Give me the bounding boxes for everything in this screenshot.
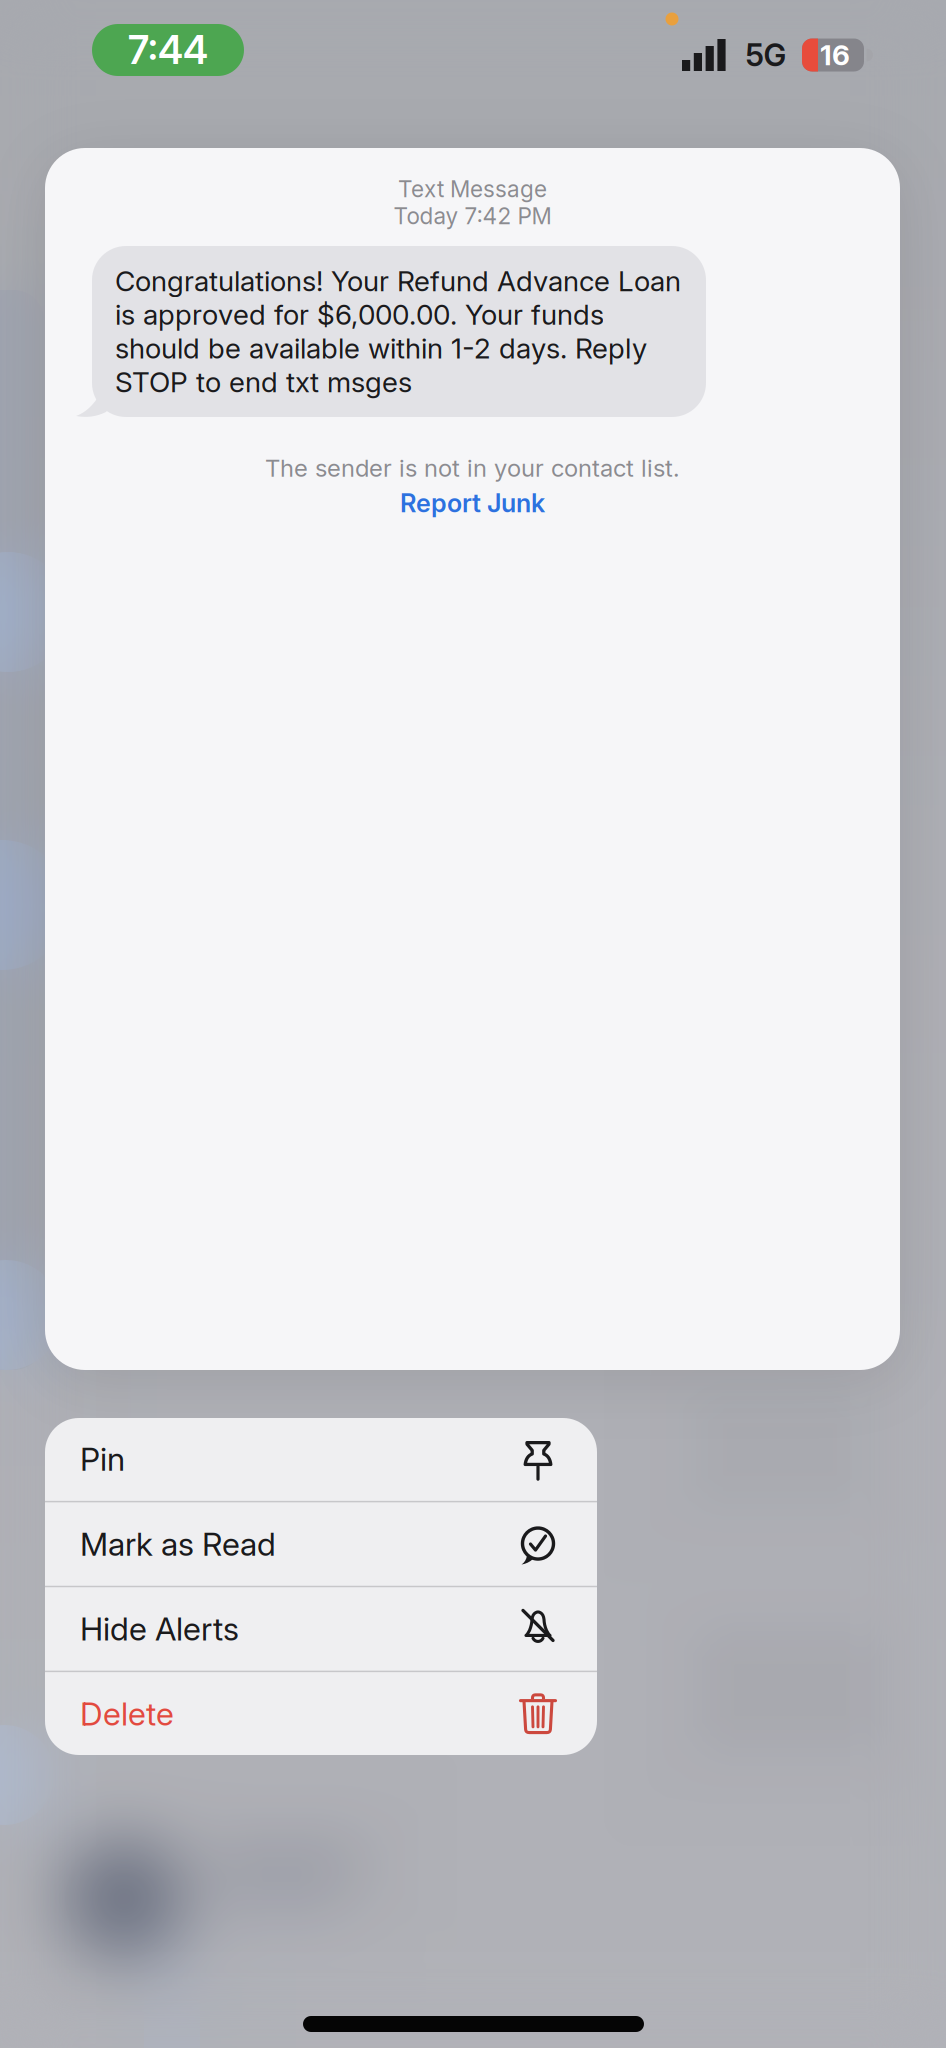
staticText: 5G xyxy=(745,37,786,73)
staticText: Congratulations! Your Refund Advance Loa… xyxy=(115,264,681,297)
staticText: 7:44 xyxy=(128,27,208,73)
staticText: Pin xyxy=(80,1440,125,1478)
button[interactable]: Return to call xyxy=(92,24,244,76)
staticText: should be available within 1-2 days. Rep… xyxy=(115,332,647,365)
staticText: STOP to end txt msges xyxy=(115,365,412,398)
staticText: is approved for $6,000.00. Your funds xyxy=(115,298,604,331)
staticText: The sender is not in your contact list. xyxy=(265,454,680,482)
button[interactable]: Mark as Read xyxy=(45,1502,597,1586)
staticText: Delete xyxy=(80,1695,174,1733)
staticText: 16 xyxy=(820,38,850,71)
staticText: Mark as Read xyxy=(80,1525,276,1563)
staticText: Today 7:42 PM xyxy=(393,203,551,229)
staticText: Hide Alerts xyxy=(80,1610,239,1648)
staticText: Report Junk xyxy=(400,488,545,518)
button[interactable]: Report Junk xyxy=(400,488,545,518)
button[interactable]: Delete xyxy=(45,1672,597,1756)
button[interactable]: Pin xyxy=(45,1417,597,1501)
staticText: Text Message xyxy=(398,176,547,202)
button[interactable]: Hide Alerts xyxy=(45,1587,597,1671)
